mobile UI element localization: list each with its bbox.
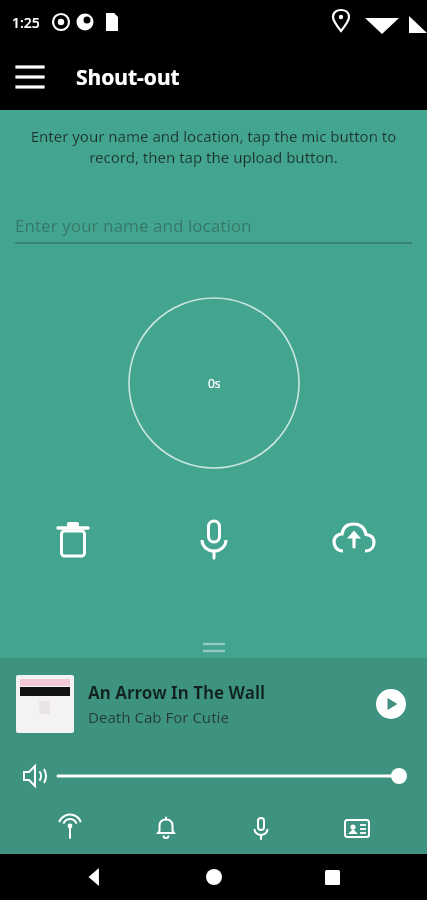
staticText: An Arrow In The Wall (88, 681, 266, 704)
button[interactable]: Broadcast (44, 802, 96, 854)
staticText: Shout-out (76, 63, 180, 92)
button[interactable]: Upload recording (327, 512, 381, 566)
button[interactable]: Contact card (331, 802, 383, 854)
button[interactable]: An Arrow In The Wall (0, 658, 427, 750)
staticText: Death Cab For Cutie (88, 707, 229, 727)
button[interactable]: Record with microphone (187, 512, 241, 566)
button[interactable]: Open navigation menu (6, 53, 54, 101)
button[interactable]: Notifications (140, 802, 192, 854)
staticText: Enter your name and location, tap the mi… (24, 126, 403, 168)
button[interactable]: Play (371, 684, 411, 724)
button[interactable]: Back (72, 854, 118, 900)
button[interactable]: Delete recording (46, 512, 100, 566)
staticText: 0s (208, 375, 221, 391)
button[interactable]: Home (191, 854, 237, 900)
staticText: 1:25 (12, 13, 40, 32)
button[interactable]: Microphone (235, 802, 287, 854)
button[interactable]: Volume (14, 756, 54, 796)
button[interactable]: Enter your name and location (15, 209, 412, 245)
staticText: Enter your name and location (15, 214, 252, 237)
button[interactable] (54, 761, 409, 791)
button[interactable]: Recent apps (309, 854, 355, 900)
